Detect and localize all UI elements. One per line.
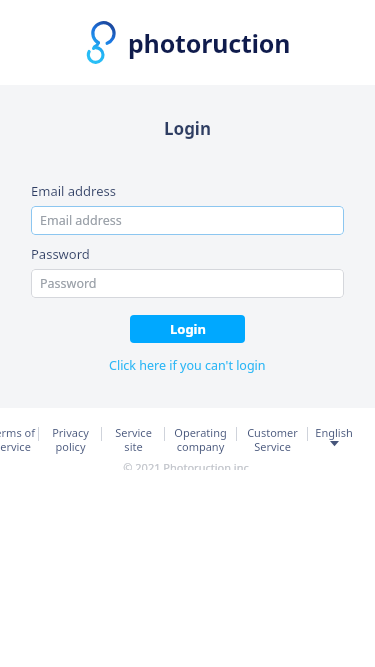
- button[interactable]: Customer Service: [237, 425, 307, 454]
- button[interactable]: Select language: [308, 425, 360, 447]
- button[interactable]: Email address: [31, 206, 344, 235]
- button[interactable]: Operating company: [165, 425, 236, 454]
- button[interactable]: Login: [130, 315, 245, 343]
- staticText: photoruction: [128, 26, 291, 60]
- staticText: Password: [40, 275, 97, 292]
- button[interactable]: Terms of Service: [0, 425, 38, 454]
- staticText: © 2021 Photoruction inc.: [123, 460, 252, 470]
- other: Photoruction logo: [85, 22, 115, 64]
- staticText: Login: [164, 117, 212, 140]
- staticText: Terms of Service: [0, 425, 35, 454]
- staticText: Privacy policy: [52, 425, 89, 454]
- staticText: Password: [31, 245, 90, 263]
- button[interactable]: Service site: [102, 425, 164, 454]
- button[interactable]: Photoruction logo: [85, 21, 291, 64]
- staticText: Email address: [31, 182, 116, 200]
- staticText: Service site: [115, 425, 152, 454]
- staticText: Click here if you can't login: [109, 357, 266, 374]
- staticText: English: [315, 425, 353, 440]
- button[interactable]: Privacy policy: [39, 425, 101, 454]
- staticText: Customer Service: [247, 425, 298, 454]
- button[interactable]: Click here if you can't login: [109, 357, 266, 374]
- staticText: Login: [170, 320, 206, 338]
- staticText: Email address: [40, 212, 122, 229]
- button[interactable]: Password: [31, 269, 344, 298]
- staticText: Operating company: [174, 425, 227, 454]
